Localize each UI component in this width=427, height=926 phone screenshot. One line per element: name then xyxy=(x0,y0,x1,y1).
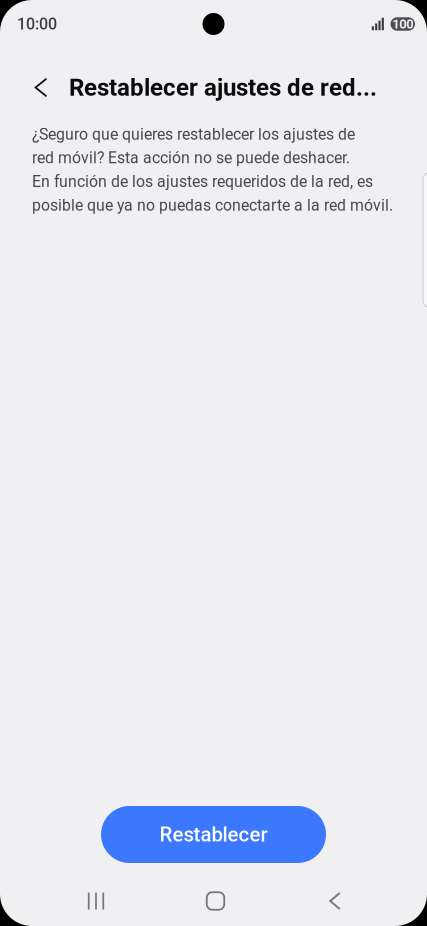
staticText: Restablecer xyxy=(159,822,267,846)
button[interactable]: Restablecer xyxy=(101,806,326,863)
button[interactable]: Home xyxy=(180,877,250,925)
staticText: 100 xyxy=(392,16,413,32)
button[interactable]: Back xyxy=(300,877,370,925)
button[interactable]: Back xyxy=(17,53,65,122)
button[interactable]: Recent apps xyxy=(61,877,131,925)
staticText: Restablecer ajustes de red... xyxy=(69,73,377,101)
staticText: ¿Seguro que quieres restablecer los ajus… xyxy=(32,125,393,215)
staticText: 10:00 xyxy=(17,15,57,33)
